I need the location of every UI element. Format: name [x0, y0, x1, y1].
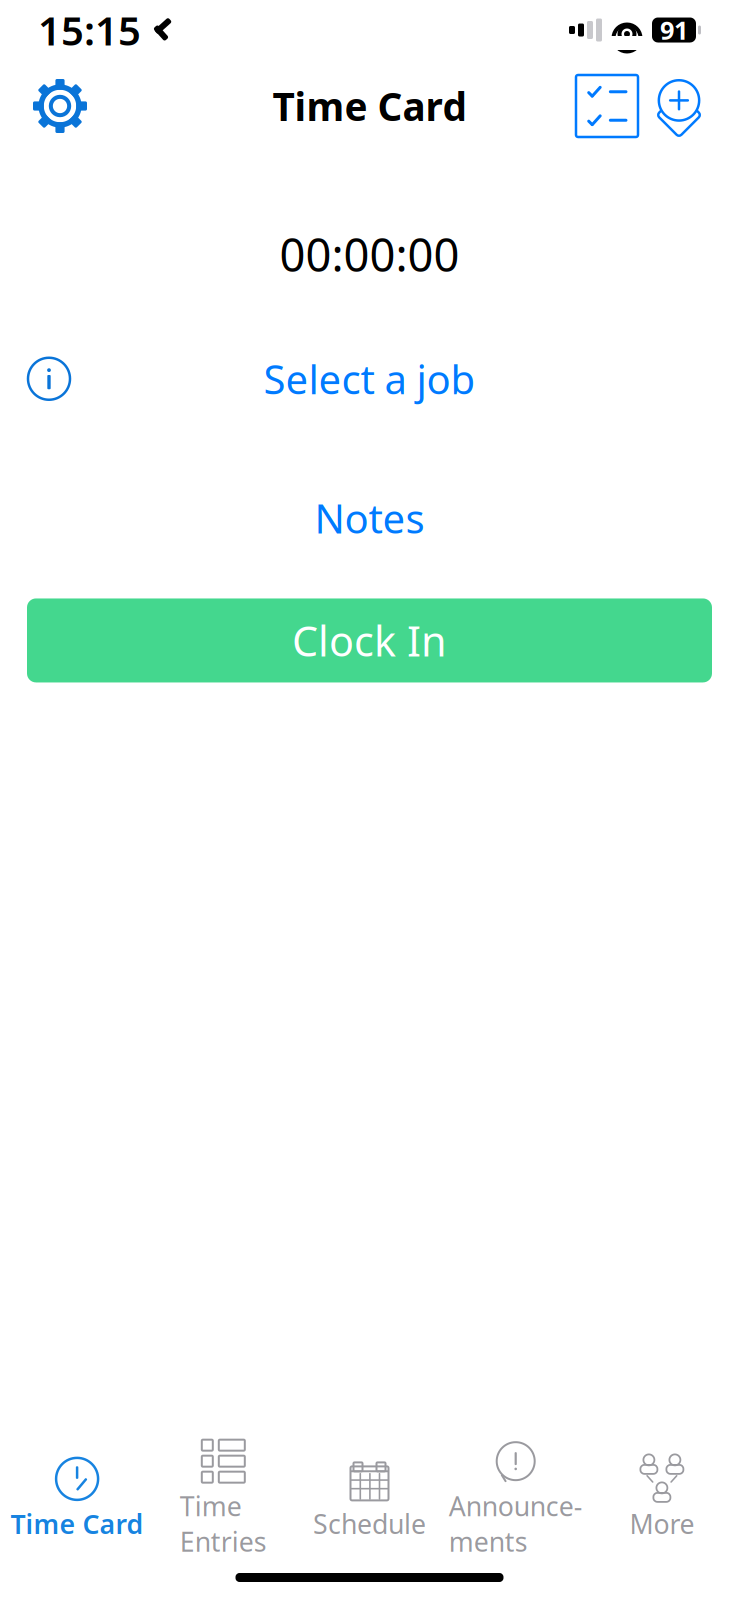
button[interactable]: Time Entries: [150, 1432, 296, 1563]
staticText: Notes: [314, 491, 424, 544]
staticText: 15:15: [38, 3, 141, 56]
staticText: 00:00:00: [279, 224, 459, 284]
button[interactable]: Tasks: [571, 70, 643, 142]
staticText: More: [629, 1506, 694, 1541]
button[interactable]: Add location: [643, 70, 715, 142]
button[interactable]: More: [589, 1450, 735, 1545]
button[interactable]: Settings: [24, 70, 96, 142]
staticText: Time Card: [272, 80, 466, 132]
button[interactable]: Notes: [0, 481, 739, 554]
button[interactable]: Job information: [18, 348, 80, 410]
staticText: Schedule: [313, 1506, 426, 1541]
button[interactable]: Announcements: [443, 1432, 589, 1563]
staticText: Announcements: [449, 1488, 583, 1559]
button[interactable]: Select a job: [0, 342, 739, 415]
button[interactable]: Time Card: [4, 1450, 150, 1545]
staticText: Time Card: [11, 1506, 144, 1541]
button[interactable]: Schedule: [296, 1450, 443, 1545]
staticText: Clock In: [292, 613, 447, 668]
staticText: Time Entries: [180, 1488, 267, 1559]
staticText: Select a job: [263, 352, 475, 405]
staticText: 91: [660, 13, 688, 47]
button[interactable]: Clock In: [27, 598, 712, 682]
